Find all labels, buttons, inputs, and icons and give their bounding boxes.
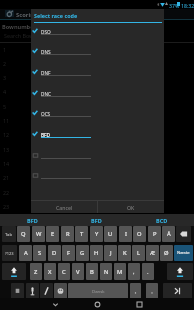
button[interactable]: Cancel xyxy=(31,201,97,213)
other: Unchecked xyxy=(33,153,38,158)
button[interactable]: Back xyxy=(43,298,67,310)
staticText: 21 xyxy=(3,174,10,181)
button[interactable]: Unchecked xyxy=(31,148,164,169)
button[interactable]: Æ xyxy=(146,245,159,261)
button[interactable]: . xyxy=(142,263,154,280)
button[interactable]: Unchecked xyxy=(31,168,164,189)
button[interactable]: J xyxy=(104,245,117,261)
button[interactable]: A xyxy=(19,245,32,261)
button[interactable]: 22 xyxy=(0,188,194,202)
staticText: B xyxy=(90,268,94,276)
button[interactable]: Emoji xyxy=(54,283,67,299)
button[interactable]: 14 xyxy=(0,159,194,173)
button[interactable]: P xyxy=(148,226,161,242)
button[interactable]: L xyxy=(132,245,145,261)
button[interactable]: I xyxy=(119,226,132,242)
button[interactable]: ?123 xyxy=(2,245,17,261)
button[interactable]: Checked xyxy=(31,106,164,127)
button[interactable]: OK xyxy=(98,201,164,213)
staticText: BFD xyxy=(27,217,38,224)
button[interactable]: K xyxy=(118,245,131,261)
button[interactable]: Dansk xyxy=(68,283,128,299)
button[interactable]: C xyxy=(58,263,70,280)
button[interactable]: 11 xyxy=(0,116,194,130)
button[interactable]: Å xyxy=(162,226,175,242)
staticText: U xyxy=(108,230,113,238)
button[interactable]: M xyxy=(114,263,126,280)
staticText: Ø xyxy=(164,249,169,257)
staticText: I xyxy=(125,230,127,238)
other: Checked xyxy=(33,70,37,74)
staticText: Q xyxy=(21,230,26,238)
button[interactable]: Handwriting xyxy=(40,283,53,299)
button[interactable]: Backspace xyxy=(176,226,191,242)
button[interactable]: N xyxy=(100,263,112,280)
staticText: V xyxy=(76,268,80,276)
button[interactable]: 5 xyxy=(0,102,194,116)
button[interactable]: Z xyxy=(30,263,42,280)
button[interactable]: Checked xyxy=(31,127,164,148)
button[interactable]: H xyxy=(90,245,103,261)
button[interactable]: 12 xyxy=(0,130,194,144)
button[interactable]: Home xyxy=(85,298,109,310)
button[interactable]: Comma xyxy=(146,283,158,299)
button[interactable]: D xyxy=(48,245,61,261)
button[interactable]: T xyxy=(75,226,88,242)
button[interactable]: 2 xyxy=(0,59,194,73)
button[interactable]: 1 xyxy=(0,45,194,59)
staticText: O xyxy=(137,230,142,238)
button[interactable]: Tab xyxy=(2,226,16,242)
staticText: H xyxy=(94,249,99,257)
staticText: DNC xyxy=(41,91,51,97)
button[interactable]: O xyxy=(133,226,146,242)
button[interactable]: B xyxy=(86,263,98,280)
button[interactable]: V xyxy=(72,263,84,280)
button[interactable]: Y xyxy=(90,226,103,242)
button[interactable]: Period xyxy=(130,283,141,299)
other: Checked xyxy=(33,111,37,115)
button[interactable]: Checked xyxy=(31,86,164,107)
staticText: Næste xyxy=(177,250,190,256)
button[interactable]: Shift xyxy=(2,263,26,280)
button[interactable]: 21 xyxy=(0,173,194,187)
button[interactable]: Ø xyxy=(160,245,173,261)
button[interactable]: Checked xyxy=(31,24,164,45)
other: Checked xyxy=(33,132,37,136)
staticText: ?123 xyxy=(5,251,14,256)
staticText: Bownumber xyxy=(2,23,36,31)
staticText: 1 xyxy=(3,46,7,53)
button[interactable]: Next xyxy=(163,283,192,299)
button[interactable]: Shift xyxy=(167,263,193,280)
button[interactable]: Q xyxy=(17,226,30,242)
staticText: A xyxy=(24,249,28,257)
button[interactable]: Næste xyxy=(174,245,193,261)
staticText: Y xyxy=(95,230,99,238)
button[interactable]: Checked xyxy=(31,65,164,86)
button[interactable]: Voice input xyxy=(26,283,39,299)
button[interactable]: BFD xyxy=(0,214,64,226)
button[interactable]: S xyxy=(33,245,46,261)
button[interactable]: E xyxy=(46,226,59,242)
button[interactable]: 3 xyxy=(0,73,194,87)
staticText: DNS xyxy=(41,49,51,55)
button[interactable]: X xyxy=(44,263,56,280)
button[interactable]: 23 xyxy=(0,202,194,216)
staticText: 2 xyxy=(3,60,7,67)
button[interactable]: BFD xyxy=(64,214,129,226)
button[interactable]: R xyxy=(61,226,74,242)
button[interactable]: Checked xyxy=(31,44,164,65)
button[interactable]: , xyxy=(128,263,140,280)
button[interactable]: F xyxy=(62,245,75,261)
button[interactable]: W xyxy=(32,226,45,242)
other: Checked xyxy=(33,29,37,33)
other: Checked xyxy=(33,49,37,53)
button[interactable]: Recents xyxy=(127,298,151,310)
button[interactable]: Settings xyxy=(11,283,24,299)
button[interactable]: BCD xyxy=(129,214,194,226)
button[interactable]: U xyxy=(104,226,117,242)
button[interactable]: 13 xyxy=(0,145,194,159)
staticText: E xyxy=(51,230,55,238)
button[interactable]: 4 xyxy=(0,87,194,101)
button[interactable]: G xyxy=(76,245,89,261)
staticText: M xyxy=(117,268,123,276)
